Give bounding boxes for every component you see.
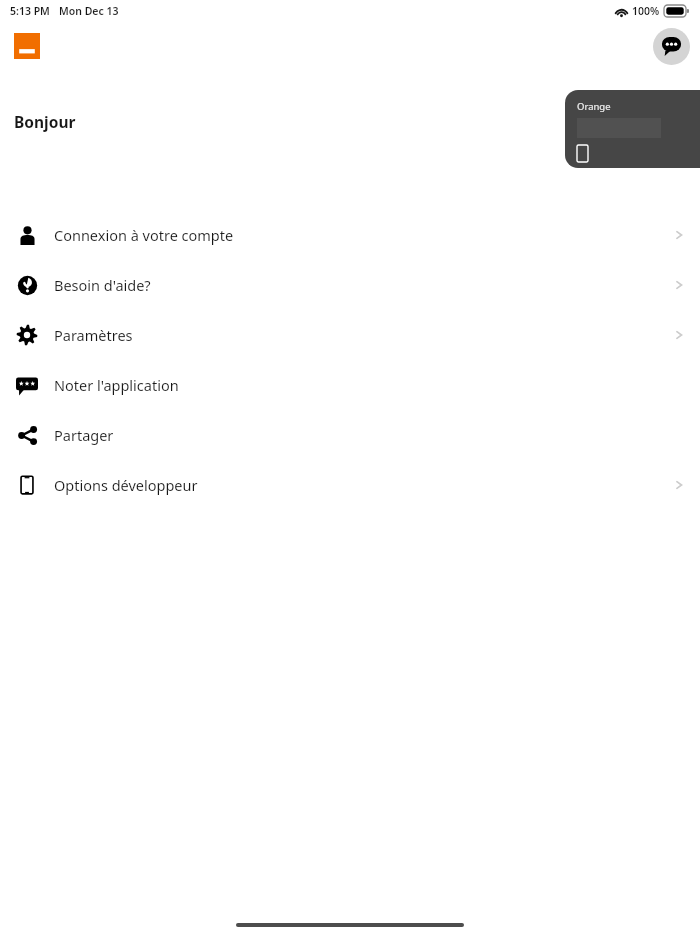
button[interactable]: Chat assistant	[653, 28, 690, 65]
button[interactable]: Besoin d'aide?	[0, 260, 700, 310]
staticText: 5:13 PM	[10, 4, 50, 18]
staticText: 100%	[632, 4, 660, 18]
staticText: Bonjour	[14, 111, 76, 132]
staticText: Connexion à votre compte	[54, 225, 234, 245]
button[interactable]: Noter l'application	[0, 360, 700, 410]
button[interactable]: Paramètres	[0, 310, 700, 360]
staticText: Options développeur	[54, 475, 198, 495]
staticText: Noter l'application	[54, 375, 179, 395]
staticText: Mon Dec 13	[59, 4, 119, 18]
staticText: Paramètres	[54, 325, 133, 345]
button[interactable]: Connexion à votre compte	[0, 210, 700, 260]
staticText: Besoin d'aide?	[54, 275, 151, 295]
staticText: Partager	[54, 425, 114, 445]
button[interactable]: Orange logo	[14, 33, 40, 59]
button[interactable]: Partager	[0, 410, 700, 460]
button[interactable]: Options développeur	[0, 460, 700, 510]
staticText: Orange	[577, 100, 611, 113]
button[interactable]: Orange	[565, 90, 700, 168]
